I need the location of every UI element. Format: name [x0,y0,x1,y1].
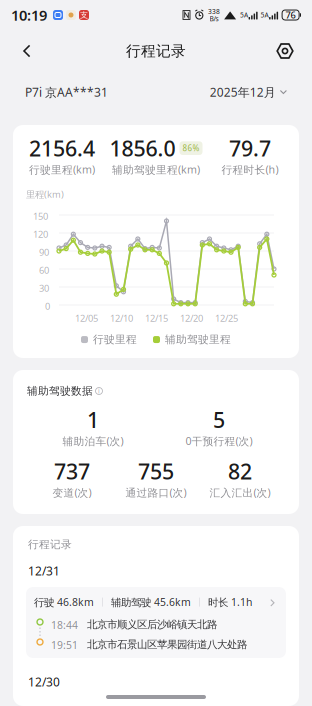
staticText: 北京市石景山区苹果园街道八大处路 [87,638,247,651]
staticText: 18:44 [51,618,78,632]
staticText: 行程时长(h) [221,162,278,176]
staticText: 30 [39,282,49,294]
staticText: P7i 京AA***31 [25,84,108,100]
staticText: 辅助驾驶里程(km) [112,162,200,176]
staticText: 支 [80,10,88,20]
staticText: 北京市顺义区后沙峪镇天北路 [87,618,217,631]
staticText: 变道(次) [52,485,91,500]
staticText: 行程记录 [28,538,72,551]
staticText: 行驶 46.8km [34,595,94,609]
button[interactable]: 返回 [8,30,46,72]
staticText: 1856.0 [109,134,175,162]
staticText: 12/15 [145,312,168,324]
button[interactable]: 行驶 46.8km [26,587,286,658]
staticText: B/s [210,14,219,23]
staticText: 79.7 [229,134,271,162]
staticText: 通过路口(次) [125,485,186,500]
staticText: 12/20 [180,312,203,324]
staticText: i [98,387,100,395]
staticText: 76 [286,9,296,21]
staticText: 12/05 [75,312,98,324]
staticText: 12/10 [110,312,133,324]
button[interactable]: 2025年12月 [210,84,287,100]
staticText: 辅助驾驶里程 [165,333,231,346]
staticText: 86% [182,143,199,153]
staticText: 行程记录 [126,42,186,60]
staticText: 12/25 [215,312,238,324]
staticText: 755 [138,457,174,485]
staticText: 0 [45,300,50,312]
staticText: 行驶里程(km) [29,162,95,176]
staticText: 12/31 [28,563,60,579]
staticText: 737 [54,457,90,485]
staticText: 5A [240,10,248,19]
staticText: 时长 1.1h [208,595,252,609]
staticText: 5A [261,10,269,19]
staticText: 里程(km) [26,188,64,200]
staticText: 辅助驾驶数据 [27,384,93,398]
staticText: 辅助泊车(次) [62,434,123,448]
staticText: 2025年12月 [210,84,276,100]
staticText: 19:51 [51,638,78,652]
staticText: 82 [228,457,252,485]
staticText: 12/30 [28,674,60,690]
staticText: 2156.4 [29,134,95,162]
staticText: 120 [33,228,48,240]
staticText: 1 [87,406,99,434]
button[interactable]: 设置 [266,30,304,72]
staticText: 辅助驾驶 45.6km [111,595,191,609]
staticText: 10:19 [11,5,47,25]
staticText: 338 [208,7,220,16]
staticText: 汇入汇出(次) [209,485,270,500]
staticText: 150 [33,210,48,222]
staticText: 0干预行程(次) [185,434,252,448]
staticText: 行驶里程 [93,333,137,346]
staticText: 90 [39,246,49,258]
staticText: 5 [213,406,225,434]
staticText: 60 [39,264,49,276]
